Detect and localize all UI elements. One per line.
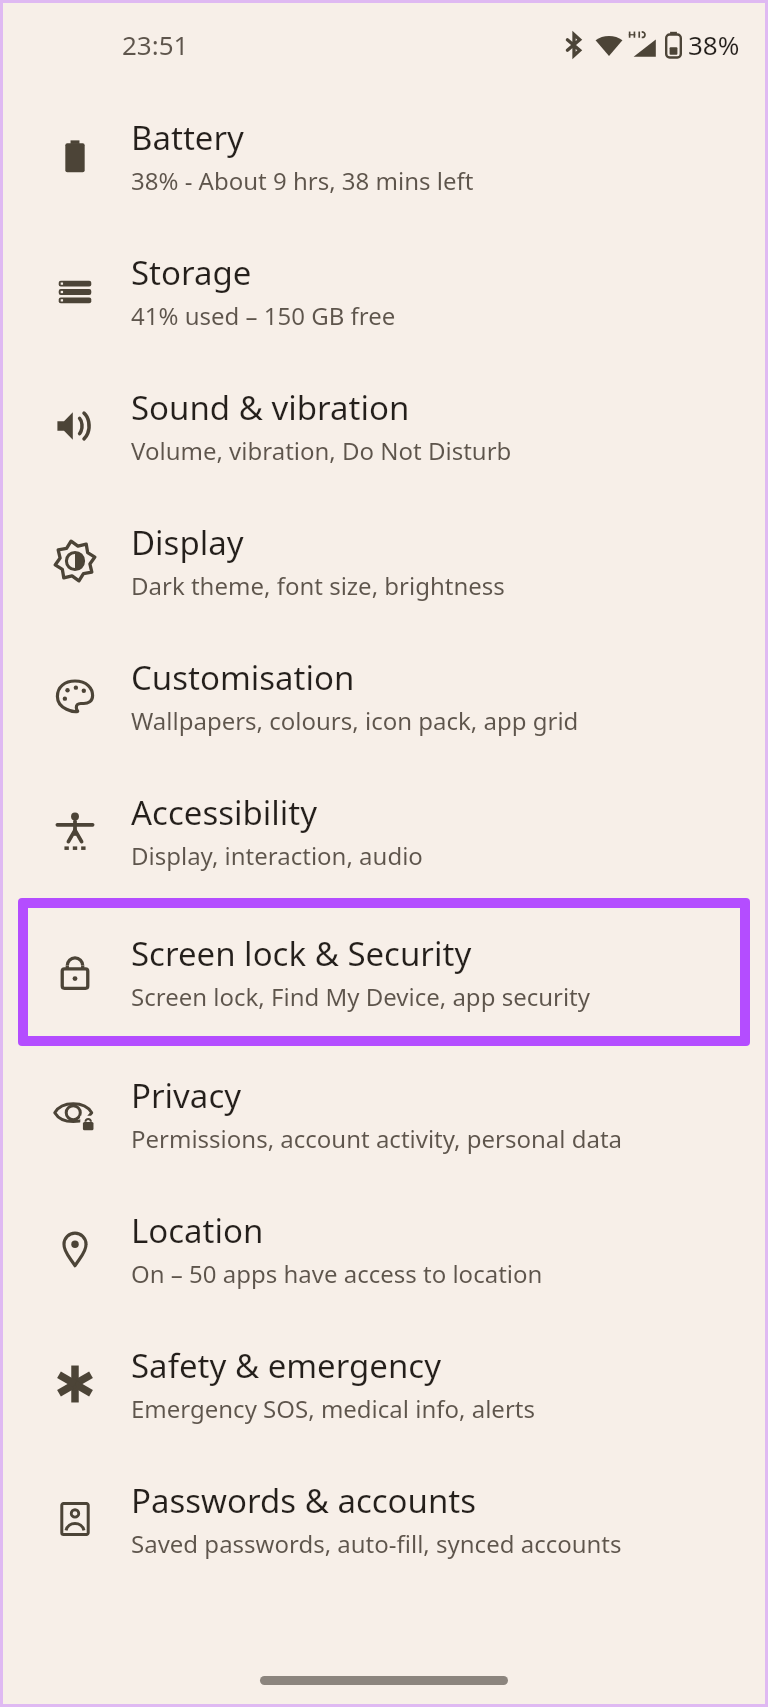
button[interactable]: Battery — [0, 88, 768, 223]
staticText: Wallpapers, colours, icon pack, app grid — [131, 704, 579, 737]
staticText: Display — [131, 520, 244, 565]
staticText: On – 50 apps have access to location — [131, 1257, 543, 1290]
button[interactable]: Sound & vibration — [0, 358, 768, 493]
staticText: Privacy — [131, 1073, 242, 1118]
staticText: Battery — [131, 115, 244, 160]
staticText: Dark theme, font size, brightness — [131, 569, 505, 602]
other: Screen lock & Security — [53, 950, 97, 994]
staticText: Passwords & accounts — [131, 1478, 477, 1523]
staticText: Sound & vibration — [131, 385, 410, 430]
staticText: Permissions, account activity, personal … — [131, 1122, 623, 1155]
staticText: 23:51 — [122, 27, 189, 62]
other: Location — [53, 1227, 97, 1271]
staticText: 38% - About 9 hrs, 38 mins left — [131, 164, 474, 197]
other: Passwords & accounts — [53, 1497, 97, 1541]
staticText: Storage — [131, 250, 252, 295]
other: Sound & vibration — [53, 404, 97, 448]
other: Storage — [53, 269, 97, 313]
staticText: Saved passwords, auto-fill, synced accou… — [131, 1527, 622, 1560]
button[interactable]: Storage — [0, 223, 768, 358]
staticText: Screen lock & Security — [131, 931, 472, 976]
staticText: Volume, vibration, Do Not Disturb — [131, 434, 512, 467]
other: Customisation — [53, 674, 97, 718]
button[interactable]: Customisation — [0, 628, 768, 763]
other: Safety & emergency — [53, 1362, 97, 1406]
staticText: Display, interaction, audio — [131, 839, 423, 872]
staticText: Customisation — [131, 655, 355, 700]
button[interactable]: Privacy — [0, 1046, 768, 1181]
staticText: Safety & emergency — [131, 1343, 442, 1388]
button[interactable]: Passwords & accounts — [0, 1451, 768, 1586]
staticText: 41% used – 150 GB free — [131, 299, 396, 332]
other: Battery — [53, 134, 97, 178]
button[interactable]: Accessibility — [0, 763, 768, 898]
button[interactable]: Display — [0, 493, 768, 628]
button[interactable]: Location — [0, 1181, 768, 1316]
button[interactable]: Screen lock & Security — [28, 908, 740, 1036]
other: Accessibility — [53, 809, 97, 853]
staticText: Accessibility — [131, 790, 318, 835]
other: Display — [53, 539, 97, 583]
staticText: Emergency SOS, medical info, alerts — [131, 1392, 535, 1425]
staticText: 38% — [688, 27, 740, 62]
button[interactable]: Safety & emergency — [0, 1316, 768, 1451]
staticText: Screen lock, Find My Device, app securit… — [131, 980, 591, 1013]
other: Privacy — [53, 1092, 97, 1136]
staticText: Location — [131, 1208, 264, 1253]
